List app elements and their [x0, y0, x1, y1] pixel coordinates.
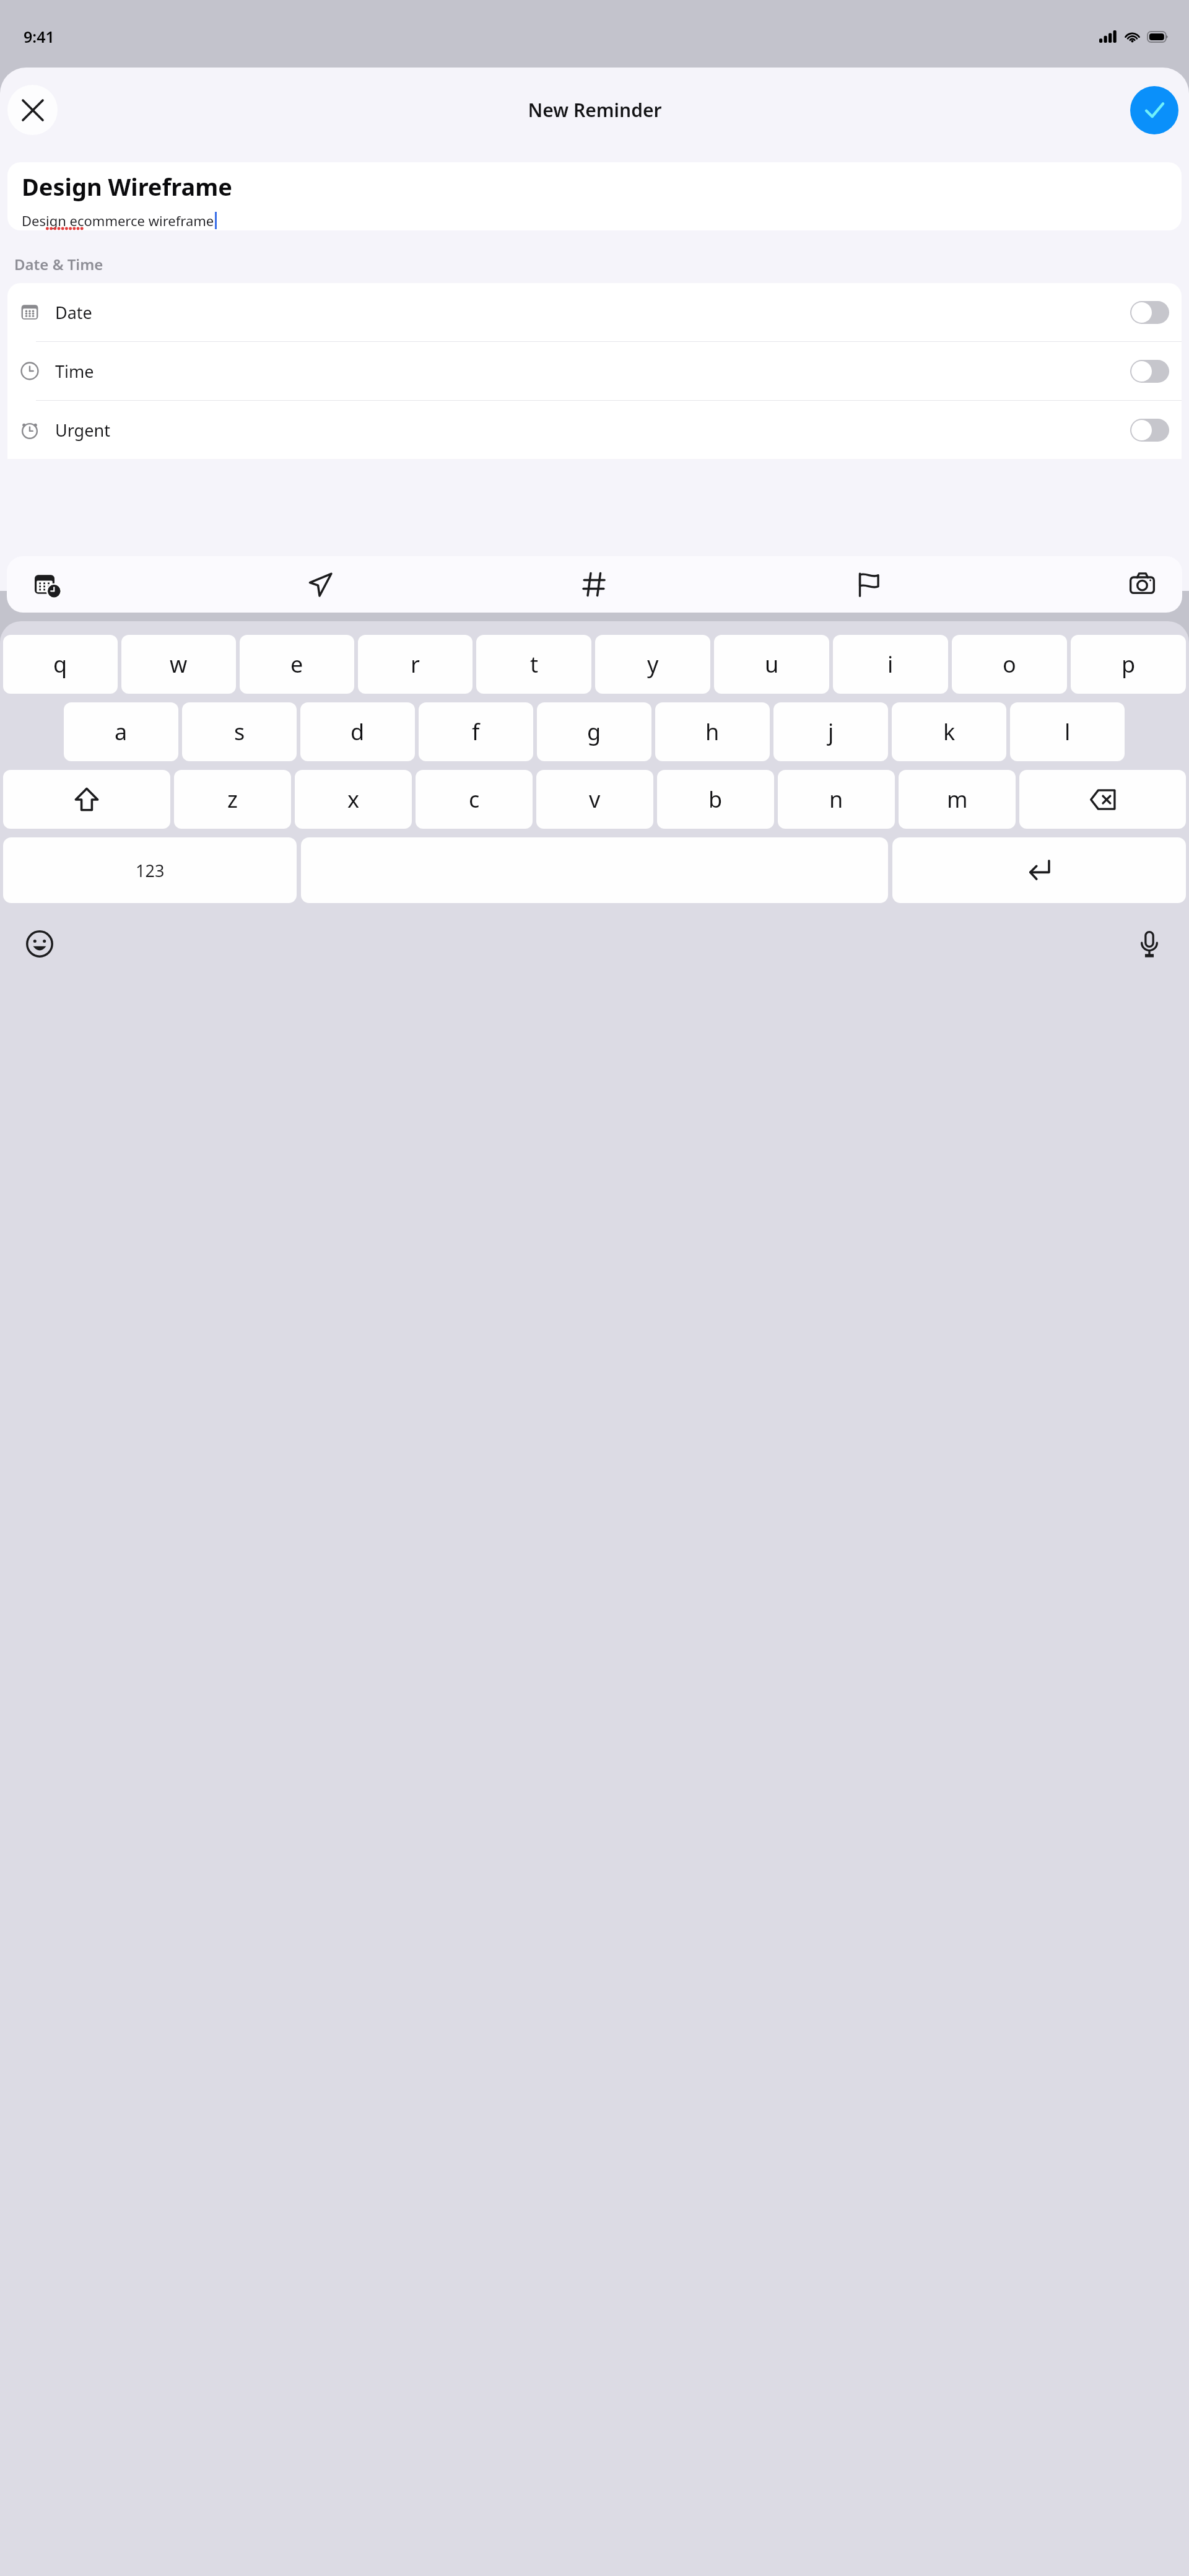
staticText: m [947, 784, 968, 814]
button[interactable]: y [595, 635, 710, 694]
button[interactable]: Send [293, 556, 349, 613]
staticText: d [351, 717, 365, 747]
staticText: g [587, 717, 601, 747]
button[interactable]: u [714, 635, 829, 694]
button[interactable]: Close [7, 85, 58, 135]
staticText: t [530, 649, 538, 679]
staticText: f [472, 717, 480, 747]
staticText: Time [55, 360, 94, 383]
button[interactable]: o [952, 635, 1067, 694]
staticText: n [829, 784, 843, 814]
staticText: r [411, 649, 420, 679]
staticText: New Reminder [528, 97, 662, 123]
button[interactable]: z [174, 770, 291, 829]
staticText: p [1121, 649, 1136, 679]
staticText: h [705, 717, 720, 747]
button[interactable]: s [182, 702, 297, 761]
staticText: s [234, 717, 245, 747]
button[interactable]: Date and time [19, 556, 75, 613]
button[interactable]: f [419, 702, 533, 761]
button[interactable]: l [1010, 702, 1125, 761]
staticText: i [887, 649, 894, 679]
staticText: 9:41 [24, 26, 54, 47]
staticText: Date & Time [14, 254, 103, 274]
staticText: Urgent [55, 419, 110, 442]
staticText: Date [55, 301, 92, 324]
staticText: y [647, 649, 659, 679]
staticText: e [290, 649, 303, 679]
button[interactable]: Urgent [7, 401, 1182, 459]
staticText: Design Wireframe [22, 170, 232, 203]
staticText: k [943, 717, 956, 747]
button[interactable]: x [295, 770, 412, 829]
button[interactable]: e [240, 635, 354, 694]
button[interactable]: Camera [1114, 556, 1170, 613]
staticText: a [115, 717, 128, 747]
staticText: j [828, 717, 834, 747]
button[interactable]: k [892, 702, 1006, 761]
button[interactable]: Tag [567, 556, 622, 613]
button[interactable] [1130, 360, 1169, 383]
button[interactable]: p [1071, 635, 1186, 694]
button[interactable]: n [778, 770, 895, 829]
button[interactable]: i [833, 635, 948, 694]
button[interactable]: Time [7, 342, 1182, 400]
button[interactable]: Return [892, 837, 1186, 903]
button[interactable]: q [3, 635, 118, 694]
button[interactable]: d [300, 702, 415, 761]
button[interactable]: r [358, 635, 473, 694]
button[interactable]: Date [7, 283, 1182, 341]
button[interactable]: Save [1130, 86, 1178, 134]
button[interactable]: Space [301, 837, 888, 903]
staticText: Design ecommerce wireframe [22, 211, 214, 230]
button[interactable]: w [121, 635, 236, 694]
button[interactable]: m [899, 770, 1016, 829]
staticText: w [170, 649, 188, 679]
button[interactable]: j [773, 702, 888, 761]
button[interactable]: v [536, 770, 653, 829]
staticText: q [53, 649, 68, 679]
button[interactable] [1130, 419, 1169, 442]
staticText: c [469, 784, 480, 814]
button[interactable]: Shift [3, 770, 170, 829]
staticText: z [227, 784, 238, 814]
staticText: v [589, 784, 601, 814]
button[interactable]: 123 [3, 837, 297, 903]
button[interactable]: b [657, 770, 774, 829]
staticText: b [708, 784, 723, 814]
staticText: 123 [136, 859, 165, 882]
button[interactable]: h [655, 702, 770, 761]
button[interactable]: g [537, 702, 651, 761]
button[interactable]: Emoji [17, 922, 62, 966]
staticText: u [765, 649, 779, 679]
staticText: o [1003, 649, 1016, 679]
button[interactable]: Backspace [1019, 770, 1186, 829]
button[interactable]: c [416, 770, 533, 829]
button[interactable]: Flag [840, 556, 896, 613]
staticText: l [1065, 717, 1071, 747]
button[interactable]: a [64, 702, 178, 761]
button[interactable]: Dictate [1127, 922, 1172, 966]
button[interactable] [1130, 301, 1169, 324]
staticText: x [347, 784, 360, 814]
button[interactable]: t [476, 635, 591, 694]
